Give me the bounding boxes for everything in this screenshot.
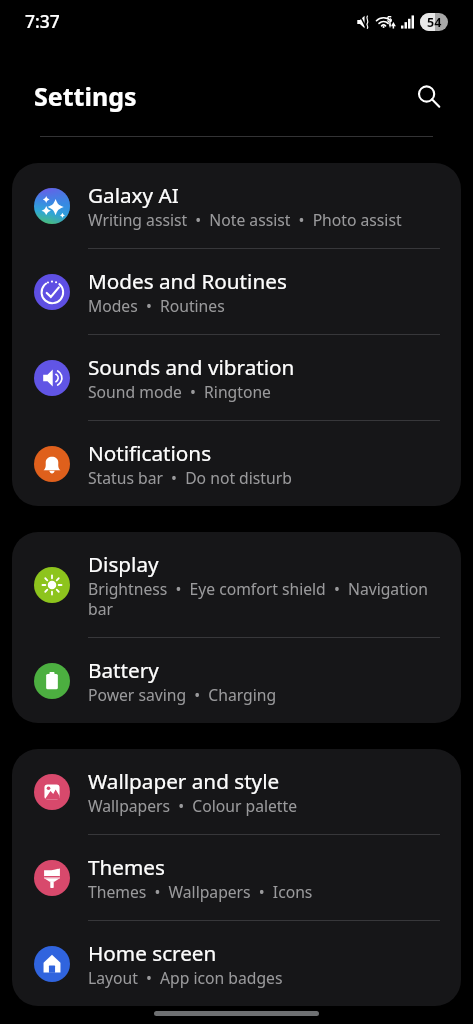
staticText: Brightness • Eye comfort shield • Naviga… — [88, 578, 440, 620]
staticText: Settings — [34, 79, 137, 113]
staticText: Wallpaper and style — [88, 767, 280, 795]
button[interactable]: Wallpaper and style — [12, 749, 461, 834]
button[interactable]: Modes and Routines — [12, 249, 461, 334]
staticText: Themes • Wallpapers • Icons — [88, 881, 313, 902]
staticText: Home screen — [88, 939, 217, 967]
staticText: Writing assist • Note assist • Photo ass… — [88, 209, 402, 230]
staticText: Battery — [88, 656, 159, 684]
staticText: Wallpapers • Colour palette — [88, 795, 298, 816]
staticText: Galaxy AI — [88, 181, 179, 209]
staticText: Modes and Routines — [88, 267, 287, 295]
staticText: Display — [88, 550, 159, 578]
button[interactable]: Battery — [12, 638, 461, 723]
button[interactable]: Search — [408, 76, 446, 114]
button[interactable]: Display — [12, 532, 461, 637]
button[interactable]: Notifications — [12, 421, 461, 506]
staticText: Modes • Routines — [88, 295, 225, 316]
staticText: 54 — [427, 14, 442, 31]
staticText: 7:37 — [25, 9, 60, 33]
staticText: Power saving • Charging — [88, 684, 277, 705]
staticText: Layout • App icon badges — [88, 967, 283, 988]
button[interactable]: Galaxy AI — [12, 163, 461, 248]
staticText: Sound mode • Ringtone — [88, 381, 271, 402]
button[interactable]: Themes — [12, 835, 461, 920]
button[interactable]: Home screen — [12, 921, 461, 1006]
staticText: Notifications — [88, 439, 212, 467]
button[interactable]: Sounds and vibration — [12, 335, 461, 420]
staticText: Sounds and vibration — [88, 353, 295, 381]
staticText: Themes — [88, 853, 165, 881]
staticText: Status bar • Do not disturb — [88, 467, 292, 488]
